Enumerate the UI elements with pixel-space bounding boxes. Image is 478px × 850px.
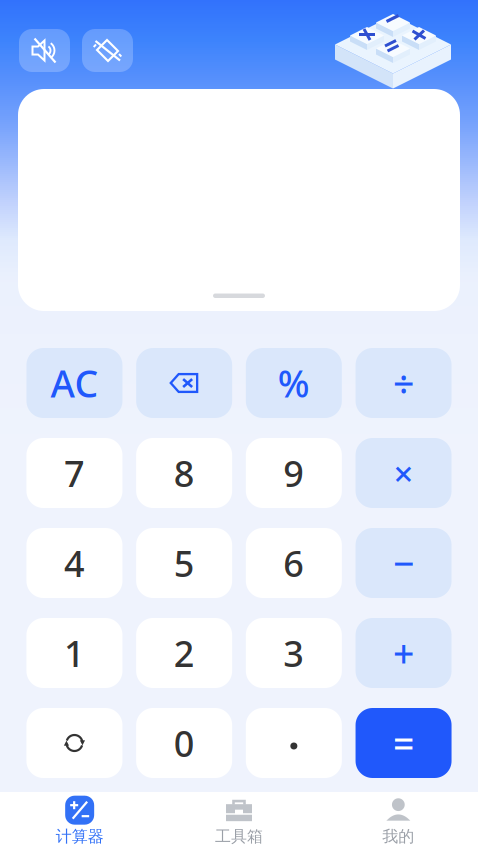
button[interactable]: 4 xyxy=(26,528,122,598)
staticText: 2 xyxy=(174,629,195,677)
button[interactable]: 9 xyxy=(246,438,342,508)
button[interactable]: 工具箱 xyxy=(159,793,319,849)
button[interactable]: AC xyxy=(26,348,122,418)
staticText: 4 xyxy=(64,539,85,587)
staticText: 1 xyxy=(64,629,85,677)
button[interactable]: Vibration off xyxy=(82,29,133,72)
button[interactable]: 1 xyxy=(26,618,122,688)
staticText: 9 xyxy=(283,449,304,497)
button[interactable]: × xyxy=(356,438,452,508)
button[interactable]: 6 xyxy=(246,528,342,598)
button[interactable]: 3 xyxy=(246,618,342,688)
staticText: 我的 xyxy=(382,827,414,846)
staticText: AC xyxy=(50,358,98,408)
staticText: 8 xyxy=(174,449,195,497)
button[interactable]: + xyxy=(356,618,452,688)
staticText: 计算器 xyxy=(56,827,104,846)
button[interactable]: Decimal point xyxy=(246,708,342,778)
staticText: 6 xyxy=(283,539,304,587)
button[interactable]: 7 xyxy=(26,438,122,508)
button[interactable]: ÷ xyxy=(356,348,452,418)
button[interactable]: 我的 xyxy=(319,793,478,849)
staticText: 工具箱 xyxy=(215,827,263,846)
staticText: 7 xyxy=(64,449,85,497)
button[interactable]: 5 xyxy=(136,528,232,598)
button[interactable]: − xyxy=(356,528,452,598)
staticText: % xyxy=(278,358,310,408)
button[interactable]: Mute sound xyxy=(19,29,70,72)
button[interactable]: 0 xyxy=(136,708,232,778)
button[interactable]: 计算器 xyxy=(0,793,159,849)
staticText: 5 xyxy=(174,539,195,587)
button[interactable]: 8 xyxy=(136,438,232,508)
button[interactable]: % xyxy=(246,348,342,418)
staticText: × xyxy=(394,450,414,496)
staticText: 0 xyxy=(174,719,195,767)
staticText: = xyxy=(393,718,414,768)
staticText: − xyxy=(393,538,414,588)
button[interactable]: = xyxy=(356,708,452,778)
staticText: ÷ xyxy=(393,358,414,408)
button[interactable]: Delete xyxy=(136,348,232,418)
staticText: + xyxy=(393,628,414,678)
button[interactable]: Convert xyxy=(26,708,122,778)
staticText: 3 xyxy=(283,629,304,677)
button[interactable]: 2 xyxy=(136,618,232,688)
